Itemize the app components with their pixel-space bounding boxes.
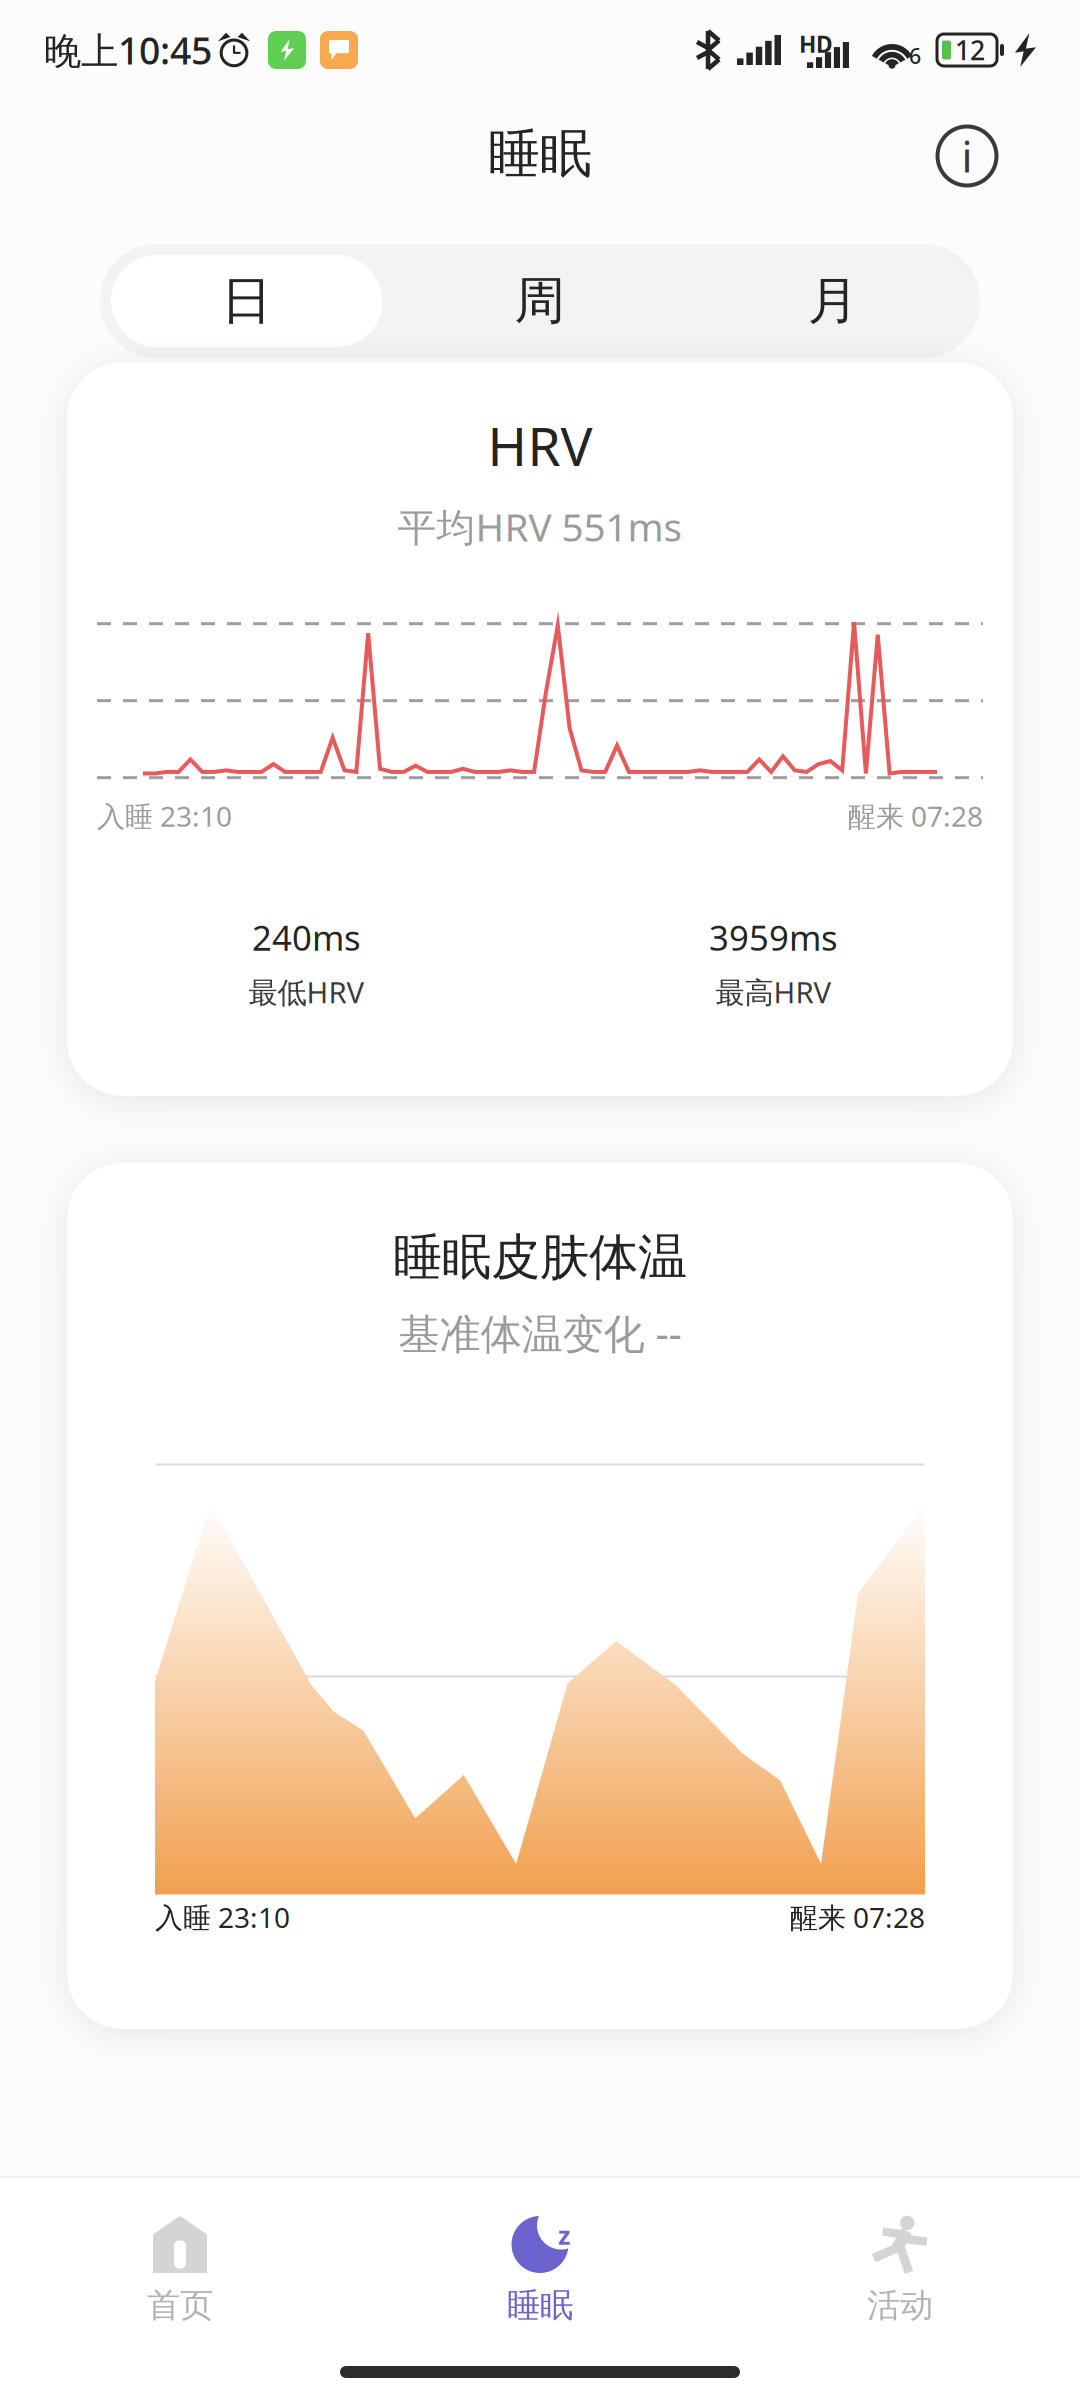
- staticText: 睡眠: [507, 2285, 573, 2326]
- staticText: i: [961, 128, 972, 184]
- staticText: 醒来 07:28: [790, 1898, 925, 1936]
- staticText: 入睡 23:10: [155, 1898, 290, 1936]
- staticText: 睡眠皮肤体温: [393, 1227, 687, 1288]
- staticText: 入睡 23:10: [97, 797, 232, 834]
- staticText: 240ms: [252, 914, 361, 960]
- staticText: HRV: [487, 410, 592, 481]
- staticText: 活动: [867, 2285, 933, 2326]
- button[interactable]: 日: [100, 244, 393, 358]
- button[interactable]: 周: [393, 244, 687, 358]
- staticText: 晚上10:45: [44, 25, 212, 75]
- staticText: 最高HRV: [715, 972, 831, 1011]
- staticText: 周: [514, 270, 565, 332]
- button[interactable]: 月: [687, 244, 980, 358]
- button[interactable]: 活动: [720, 2216, 1080, 2326]
- staticText: z: [558, 2218, 570, 2252]
- staticText: 首页: [147, 2285, 213, 2326]
- staticText: HD: [799, 29, 833, 59]
- button[interactable]: Info: [919, 100, 1015, 212]
- button[interactable]: 首页: [0, 2216, 360, 2326]
- staticText: 基准体温变化 --: [398, 1306, 681, 1360]
- staticText: 睡眠: [488, 122, 592, 186]
- staticText: 平均HRV 551ms: [397, 501, 682, 552]
- staticText: 3959ms: [709, 914, 838, 960]
- staticText: 6: [909, 42, 921, 70]
- button[interactable]: z: [360, 2216, 720, 2326]
- staticText: 日: [221, 270, 272, 332]
- staticText: 最低HRV: [248, 972, 364, 1011]
- staticText: 月: [808, 270, 859, 332]
- staticText: 12: [955, 32, 985, 68]
- staticText: 醒来 07:28: [848, 797, 983, 834]
